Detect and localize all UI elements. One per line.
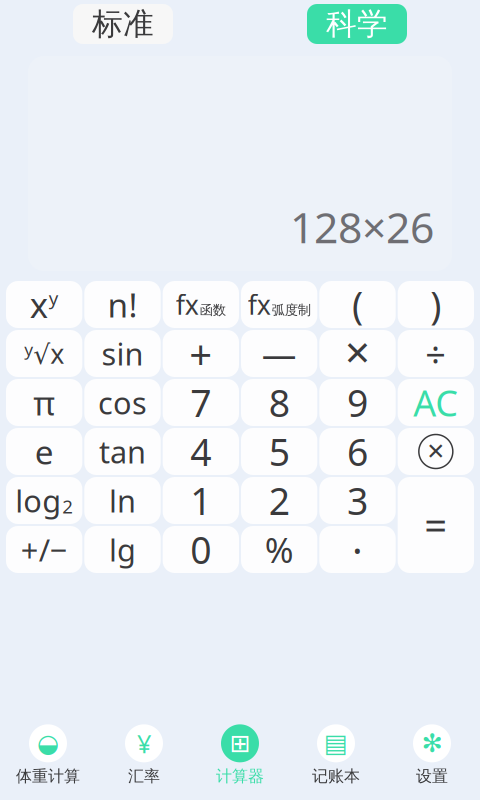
- button[interactable]: π: [6, 379, 82, 426]
- staticText: 标准: [92, 5, 154, 43]
- staticText: 4: [190, 427, 211, 476]
- button[interactable]: 3: [319, 477, 396, 524]
- staticText: 128×26: [290, 198, 434, 255]
- staticText: ✻: [421, 729, 442, 758]
- staticText: 2: [62, 494, 73, 519]
- button[interactable]: log: [6, 477, 82, 524]
- button[interactable]: +: [163, 330, 239, 377]
- button[interactable]: ln: [84, 477, 161, 524]
- staticText: ·: [352, 523, 363, 576]
- staticText: y: [49, 286, 59, 310]
- button[interactable]: 2: [241, 477, 317, 524]
- button[interactable]: ◒: [0, 724, 96, 786]
- staticText: fx: [248, 287, 271, 322]
- staticText: AC: [413, 379, 458, 426]
- button[interactable]: 5: [241, 428, 317, 475]
- staticText: ln: [109, 480, 136, 521]
- button[interactable]: 8: [241, 379, 317, 426]
- staticText: 0: [190, 525, 211, 574]
- staticText: x: [30, 281, 48, 327]
- button[interactable]: 4: [163, 428, 239, 475]
- staticText: —: [262, 330, 297, 376]
- staticText: cos: [98, 382, 147, 423]
- staticText: ▤: [324, 729, 348, 758]
- staticText: 8: [269, 378, 290, 427]
- staticText: ÷: [425, 330, 446, 377]
- staticText: ✕: [426, 439, 445, 464]
- button[interactable]: =: [398, 477, 474, 573]
- staticText: e: [35, 429, 54, 474]
- button[interactable]: ⊞: [192, 724, 288, 786]
- staticText: 2: [269, 476, 290, 525]
- staticText: 7: [190, 378, 211, 427]
- button[interactable]: fx: [241, 281, 317, 328]
- button[interactable]: ʸ√x: [6, 330, 82, 377]
- button[interactable]: fx: [163, 281, 239, 328]
- button[interactable]: n!: [84, 281, 161, 328]
- button[interactable]: 科学: [307, 4, 407, 44]
- staticText: 记账本: [312, 766, 360, 786]
- staticText: 计算器: [216, 766, 264, 786]
- staticText: fx: [176, 287, 199, 322]
- button[interactable]: ¥: [96, 724, 192, 786]
- staticText: (: [352, 280, 363, 329]
- staticText: 3: [347, 476, 368, 525]
- button[interactable]: (: [319, 281, 396, 328]
- staticText: 体重计算: [16, 766, 80, 786]
- staticText: n!: [107, 282, 137, 327]
- button[interactable]: 6: [319, 428, 396, 475]
- button[interactable]: %: [241, 526, 317, 573]
- staticText: 函数: [200, 302, 226, 318]
- staticText: 汇率: [128, 766, 160, 786]
- button[interactable]: e: [6, 428, 82, 475]
- button[interactable]: ✕: [319, 330, 396, 377]
- staticText: ʸ√x: [24, 336, 64, 371]
- staticText: log: [15, 480, 61, 521]
- staticText: lg: [109, 529, 136, 570]
- button[interactable]: 9: [319, 379, 396, 426]
- button[interactable]: ✕: [398, 428, 474, 475]
- button[interactable]: ÷: [398, 330, 474, 377]
- button[interactable]: 标准: [73, 4, 173, 44]
- button[interactable]: ): [398, 281, 474, 328]
- button[interactable]: x: [6, 281, 82, 328]
- staticText: ◒: [37, 729, 59, 758]
- staticText: tan: [99, 431, 146, 472]
- staticText: π: [33, 380, 55, 425]
- button[interactable]: lg: [84, 526, 161, 573]
- staticText: =: [424, 498, 447, 551]
- button[interactable]: cos: [84, 379, 161, 426]
- button[interactable]: ✻: [384, 724, 480, 786]
- staticText: 9: [347, 378, 368, 427]
- button[interactable]: —: [241, 330, 317, 377]
- button[interactable]: +/−: [6, 526, 82, 573]
- button[interactable]: sin: [84, 330, 161, 377]
- button[interactable]: AC: [398, 379, 474, 426]
- staticText: ): [430, 280, 441, 329]
- staticText: +/−: [21, 529, 68, 570]
- button[interactable]: 7: [163, 379, 239, 426]
- button[interactable]: ▤: [288, 724, 384, 786]
- staticText: ⊞: [229, 729, 250, 758]
- staticText: 6: [347, 427, 368, 476]
- staticText: %: [265, 526, 294, 572]
- staticText: 科学: [326, 5, 388, 43]
- staticText: sin: [101, 333, 143, 374]
- button[interactable]: 0: [163, 526, 239, 573]
- staticText: ✕: [343, 335, 371, 372]
- staticText: 设置: [416, 766, 448, 786]
- staticText: 1: [190, 476, 211, 525]
- staticText: +: [189, 327, 212, 380]
- button[interactable]: ·: [319, 526, 396, 573]
- staticText: 5: [269, 427, 290, 476]
- staticText: 弧度制: [272, 302, 311, 318]
- button[interactable]: 1: [163, 477, 239, 524]
- staticText: ¥: [137, 726, 151, 760]
- button[interactable]: tan: [84, 428, 161, 475]
